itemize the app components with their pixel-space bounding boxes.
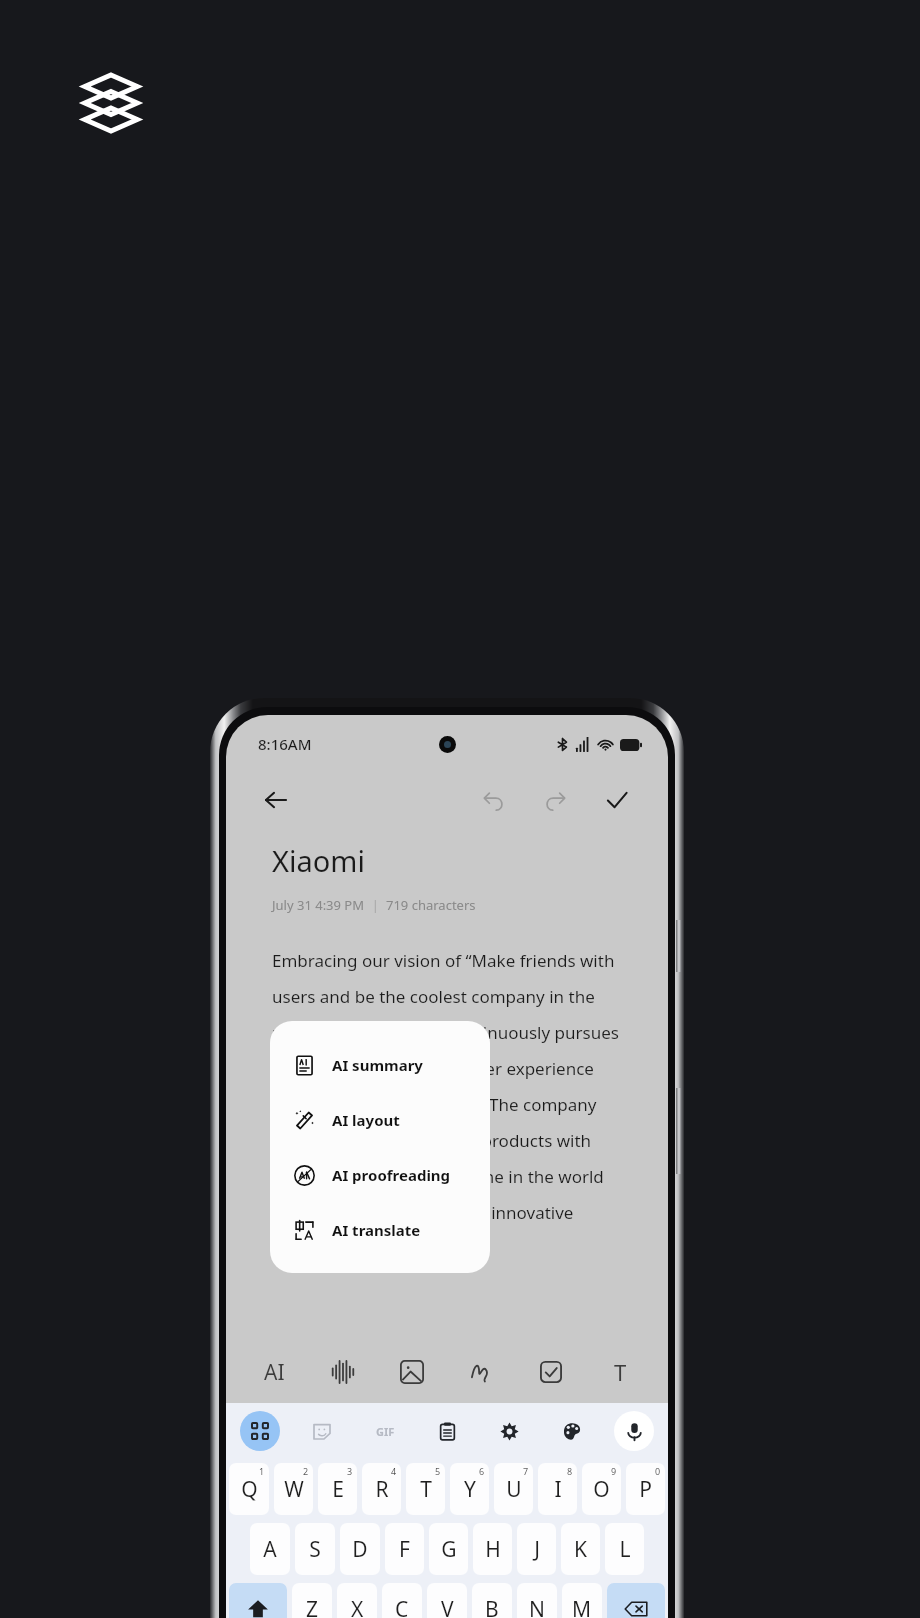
- button[interactable]: AI translate: [270, 1202, 490, 1257]
- staticText: |: [365, 896, 386, 914]
- staticText: 3: [347, 1465, 353, 1477]
- staticText: 1: [259, 1465, 265, 1477]
- staticText: 0: [655, 1465, 661, 1477]
- button[interactable]: Insert image: [390, 1350, 434, 1394]
- staticText: innovation and extreme user experience: [272, 1057, 594, 1080]
- button[interactable]: Redo: [534, 779, 576, 821]
- staticText: J: [534, 1535, 540, 1564]
- staticText: B: [485, 1595, 499, 1618]
- staticText: technology.: [272, 1237, 365, 1260]
- button[interactable]: B: [472, 1583, 512, 1618]
- button[interactable]: Settings: [489, 1411, 529, 1451]
- staticText: and insists on high quality. The company: [272, 1093, 597, 1116]
- staticText: 8: [567, 1465, 573, 1477]
- staticText: high quality so that everyone in the wor…: [272, 1165, 604, 1188]
- staticText: Embracing our vision of “Make friends wi…: [272, 949, 615, 972]
- button[interactable]: Voice input: [614, 1411, 654, 1451]
- staticText: E: [332, 1475, 344, 1504]
- staticText: T: [420, 1475, 432, 1504]
- button[interactable]: Text format: [598, 1350, 642, 1394]
- button[interactable]: J: [517, 1523, 556, 1575]
- staticText: 8:16AM: [258, 734, 312, 754]
- staticText: I: [554, 1475, 562, 1504]
- staticText: P: [639, 1475, 652, 1504]
- button[interactable]: X: [337, 1583, 377, 1618]
- button[interactable]: Stickers: [302, 1411, 342, 1451]
- staticText: users and be the coolest company in the: [272, 985, 595, 1008]
- staticText: H: [485, 1535, 501, 1564]
- button[interactable]: M: [562, 1583, 602, 1618]
- button[interactable]: C: [382, 1583, 422, 1618]
- button[interactable]: F: [385, 1523, 424, 1575]
- staticText: S: [309, 1535, 321, 1564]
- staticText: F: [399, 1535, 410, 1564]
- button[interactable]: D: [340, 1523, 380, 1575]
- button[interactable]: R: [362, 1463, 401, 1515]
- staticText: V: [441, 1595, 454, 1618]
- button[interactable]: H: [473, 1523, 512, 1575]
- button[interactable]: Toolbox: [240, 1411, 280, 1451]
- button[interactable]: Checklist: [529, 1350, 573, 1394]
- button[interactable]: AI summary: [270, 1037, 490, 1092]
- button[interactable]: Q: [229, 1463, 269, 1515]
- button[interactable]: Clipboard: [427, 1411, 467, 1451]
- button[interactable]: E: [318, 1463, 357, 1515]
- button[interactable]: Shift: [229, 1583, 287, 1618]
- staticText: 2: [303, 1465, 309, 1477]
- staticText: AI: [264, 1358, 285, 1387]
- button[interactable]: AI tools: [252, 1350, 296, 1394]
- button[interactable]: P: [626, 1463, 665, 1515]
- button[interactable]: I: [538, 1463, 577, 1515]
- staticText: R: [375, 1475, 389, 1504]
- button[interactable]: Z: [292, 1583, 332, 1618]
- button[interactable]: AI layout: [270, 1092, 490, 1147]
- button[interactable]: Handwriting: [460, 1350, 504, 1394]
- staticText: 5: [435, 1465, 441, 1477]
- staticText: Y: [464, 1475, 476, 1504]
- staticText: W: [284, 1475, 304, 1504]
- staticText: M: [572, 1595, 592, 1618]
- staticText: O: [593, 1475, 610, 1504]
- button[interactable]: A: [250, 1523, 290, 1575]
- button[interactable]: K: [561, 1523, 600, 1575]
- button[interactable]: G: [429, 1523, 468, 1575]
- button[interactable]: Done: [596, 779, 638, 821]
- staticText: AI proofreading: [332, 1165, 451, 1185]
- staticText: GIF: [376, 1424, 395, 1439]
- button[interactable]: Backspace: [607, 1583, 665, 1618]
- button[interactable]: L: [605, 1523, 644, 1575]
- button[interactable]: GIF: [365, 1411, 405, 1451]
- staticText: AI summary: [332, 1055, 423, 1075]
- staticText: can enjoy a better life from innovative: [272, 1201, 574, 1224]
- button[interactable]: Back: [256, 780, 296, 820]
- staticText: A: [263, 1535, 277, 1564]
- staticText: 719 characters: [386, 896, 476, 914]
- button[interactable]: Undo: [472, 779, 514, 821]
- staticText: Xiaomi: [272, 841, 365, 880]
- button[interactable]: O: [582, 1463, 621, 1515]
- button[interactable]: W: [274, 1463, 313, 1515]
- staticText: T: [614, 1357, 627, 1387]
- button[interactable]: U: [494, 1463, 533, 1515]
- button[interactable]: V: [427, 1583, 467, 1618]
- staticText: C: [395, 1595, 409, 1618]
- staticText: L: [619, 1535, 631, 1564]
- button[interactable]: Y: [450, 1463, 489, 1515]
- staticText: 7: [523, 1465, 529, 1477]
- staticText: 4: [391, 1465, 397, 1477]
- staticText: U: [506, 1475, 522, 1504]
- button[interactable]: S: [295, 1523, 335, 1575]
- staticText: X: [351, 1595, 364, 1618]
- staticText: July 31 4:39 PM: [272, 896, 365, 914]
- staticText: N: [529, 1595, 545, 1618]
- button[interactable]: T: [406, 1463, 445, 1515]
- staticText: 9: [611, 1465, 617, 1477]
- staticText: is committed to providing products with: [272, 1129, 592, 1152]
- button[interactable]: Layers logo: [78, 70, 144, 136]
- button[interactable]: AI proofreading: [270, 1147, 490, 1202]
- button[interactable]: N: [517, 1583, 557, 1618]
- button[interactable]: Themes: [552, 1411, 592, 1451]
- button[interactable]: Voice: [321, 1350, 365, 1394]
- staticText: Q: [241, 1475, 258, 1504]
- staticText: 6: [479, 1465, 485, 1477]
